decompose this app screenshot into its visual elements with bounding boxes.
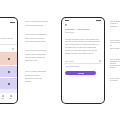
staticText: Assigned Missing Done <box>0 37 13 40</box>
button[interactable]: Submit <box>65 71 96 75</box>
staticText: You can search important answers from th… <box>25 70 48 82</box>
staticText: This is where you can add an attachment <box>110 39 120 50</box>
staticText: This is where to write a reflection <box>110 20 120 28</box>
staticText: You can filter assignments, field status… <box>25 33 48 42</box>
button[interactable]: Tab <box>9 95 12 99</box>
button[interactable]: Attach file <box>99 60 101 62</box>
button[interactable]: Back <box>65 24 67 26</box>
button[interactable] <box>0 52 17 65</box>
staticText: You can set the private the release of t… <box>25 49 48 61</box>
staticText: Your work <box>65 60 74 62</box>
staticText: Once ready to submit <box>110 77 120 81</box>
button[interactable]: Tab <box>1 95 4 99</box>
staticText: You can attach files through to touch as… <box>25 20 48 26</box>
button[interactable] <box>0 66 17 77</box>
staticText: This is where students can see the gradi… <box>110 58 120 68</box>
staticText: Assignment 1 - STEM Reflection <box>65 28 90 30</box>
staticText: Submit <box>78 72 84 74</box>
staticText: Choose the area of your STEM project tha… <box>65 38 101 55</box>
staticText: Due 5 May <box>65 31 74 33</box>
staticText: Add attachment <box>65 65 80 68</box>
button[interactable] <box>0 78 17 89</box>
